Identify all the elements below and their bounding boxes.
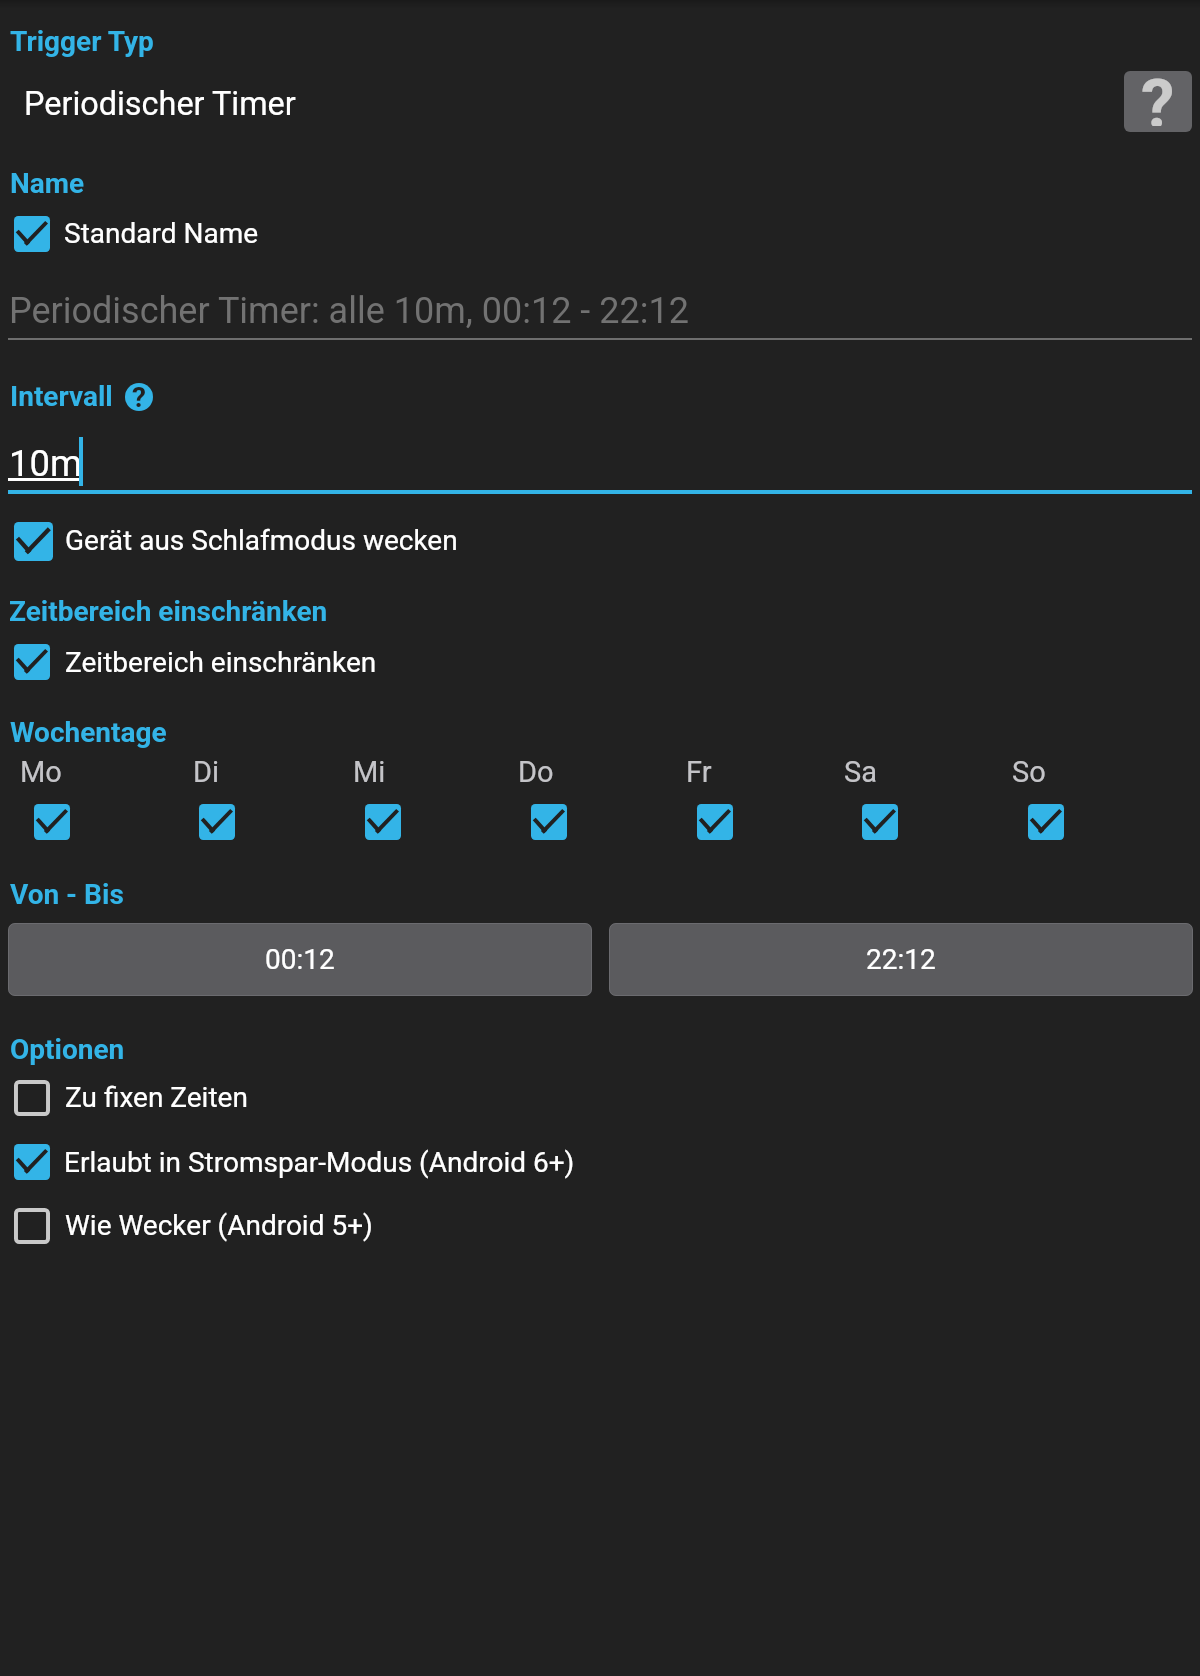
button[interactable]: Hilfe zu Intervall (125, 383, 153, 411)
button[interactable]: Periodischer Timer (0, 66, 1100, 126)
button[interactable]: 22:12 (609, 923, 1193, 996)
staticText: Periodischer Timer: alle 10m, 00:12 - 22… (9, 290, 689, 332)
staticText: Periodischer Timer (24, 85, 296, 123)
staticText: 22:12 (866, 943, 936, 976)
staticText: Mi (353, 755, 386, 789)
staticText: So (1012, 755, 1046, 789)
staticText: Intervall (10, 380, 113, 413)
staticText: Von - Bis (10, 878, 124, 911)
staticText: Standard Name (64, 217, 259, 250)
staticText: ? (1141, 71, 1175, 126)
staticText: 10m (9, 442, 82, 485)
staticText: Zeitbereich einschränken (65, 646, 377, 679)
button[interactable]: Zeitbereich einschränken (0, 637, 1200, 687)
staticText: Wochentage (10, 716, 167, 749)
button[interactable]: So (1006, 755, 1086, 845)
staticText: Trigger Typ (10, 25, 154, 58)
button[interactable]: Zu fixen Zeiten (0, 1073, 1200, 1123)
staticText: Mo (20, 755, 62, 789)
staticText: Zeitbereich einschränken (9, 595, 328, 628)
staticText: Do (518, 755, 554, 789)
staticText: Fr (686, 755, 712, 789)
button[interactable]: Standard Name (0, 209, 1200, 259)
button[interactable]: Di (177, 755, 257, 845)
staticText: Zu fixen Zeiten (65, 1081, 248, 1114)
staticText: Di (193, 755, 220, 789)
button[interactable]: Hilfe (1124, 71, 1192, 132)
staticText: Sa (844, 755, 877, 789)
staticText: ? (132, 383, 146, 409)
button[interactable]: Erlaubt in Stromspar-Modus (Android 6+) (0, 1137, 1200, 1187)
staticText: Gerät aus Schlafmodus wecken (65, 524, 458, 557)
button[interactable]: Gerät aus Schlafmodus wecken (0, 515, 1200, 568)
staticText: Name (10, 167, 85, 200)
button[interactable]: Do (509, 755, 589, 845)
staticText: 00:12 (265, 943, 335, 976)
button[interactable]: Fr (675, 755, 755, 845)
button[interactable]: Sa (840, 755, 920, 845)
staticText: Optionen (10, 1033, 125, 1066)
button[interactable]: Mo (12, 755, 92, 845)
button[interactable]: 00:12 (8, 923, 592, 996)
button[interactable]: 10m (0, 428, 1192, 494)
staticText: Erlaubt in Stromspar-Modus (Android 6+) (64, 1146, 575, 1179)
button[interactable]: Mi (343, 755, 423, 845)
button[interactable]: Wie Wecker (Android 5+) (0, 1201, 1200, 1251)
staticText: Wie Wecker (Android 5+) (65, 1209, 373, 1242)
